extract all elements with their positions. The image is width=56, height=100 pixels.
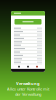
staticText: der Verwaltung <box>15 91 41 97</box>
staticText: Verwaltung <box>16 81 40 86</box>
staticText: Alles unter Kontrolle mit <box>7 86 49 91</box>
button[interactable] <box>14 19 41 24</box>
